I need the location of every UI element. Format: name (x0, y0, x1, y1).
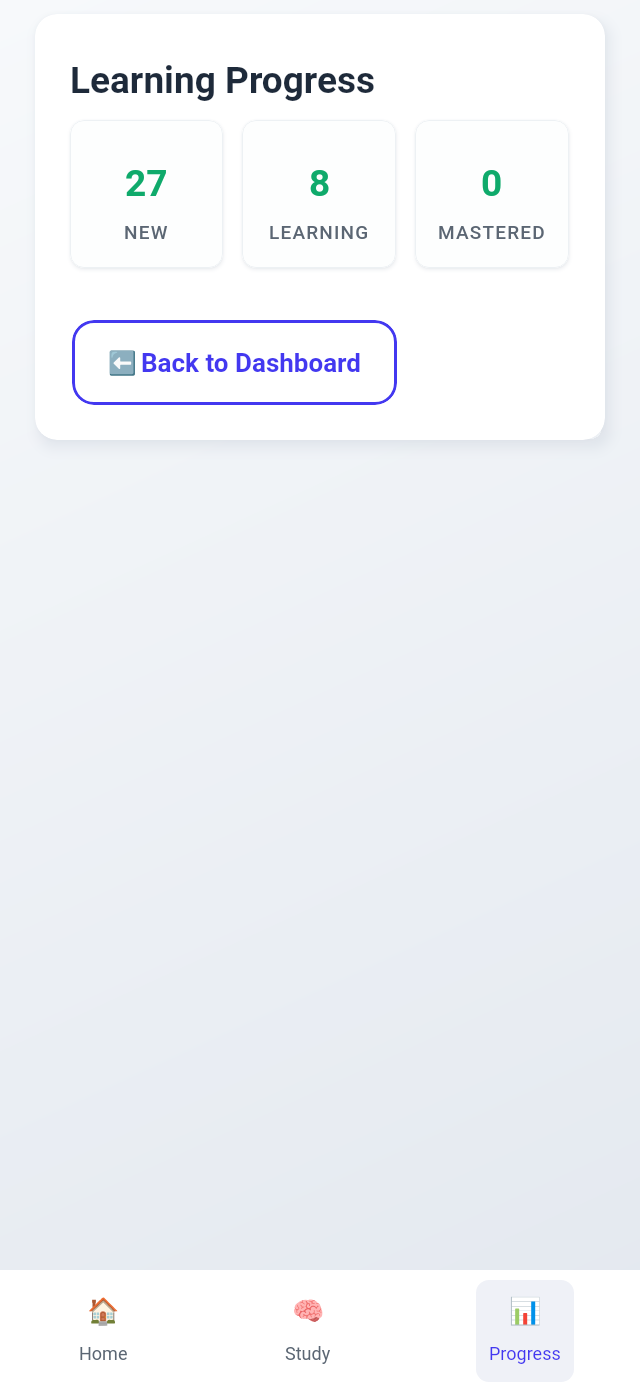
staticText: NEW (124, 221, 169, 243)
staticText: 0 (481, 162, 503, 205)
staticText: 27 (125, 162, 168, 205)
staticText: Home (79, 1343, 128, 1364)
staticText: 📊 (509, 1296, 542, 1326)
staticText: Study (285, 1343, 331, 1364)
button[interactable]: Progress (476, 1280, 574, 1382)
staticText: 8 (309, 162, 331, 205)
button[interactable]: 0 (415, 120, 569, 268)
button[interactable]: 27 (70, 120, 223, 268)
staticText: 🏠 (87, 1296, 120, 1326)
staticText: 🧠 (292, 1296, 325, 1326)
staticText: Learning Progress (70, 59, 376, 102)
button[interactable]: ⬅️ (72, 320, 397, 405)
button[interactable]: 8 (242, 120, 396, 268)
staticText: ⬅️ (108, 350, 137, 377)
button[interactable]: Study (259, 1280, 357, 1382)
staticText: Back to Dashboard (141, 348, 362, 378)
staticText: MASTERED (438, 221, 546, 243)
button[interactable]: Home (54, 1280, 152, 1382)
staticText: LEARNING (269, 221, 370, 243)
staticText: Progress (489, 1343, 561, 1364)
